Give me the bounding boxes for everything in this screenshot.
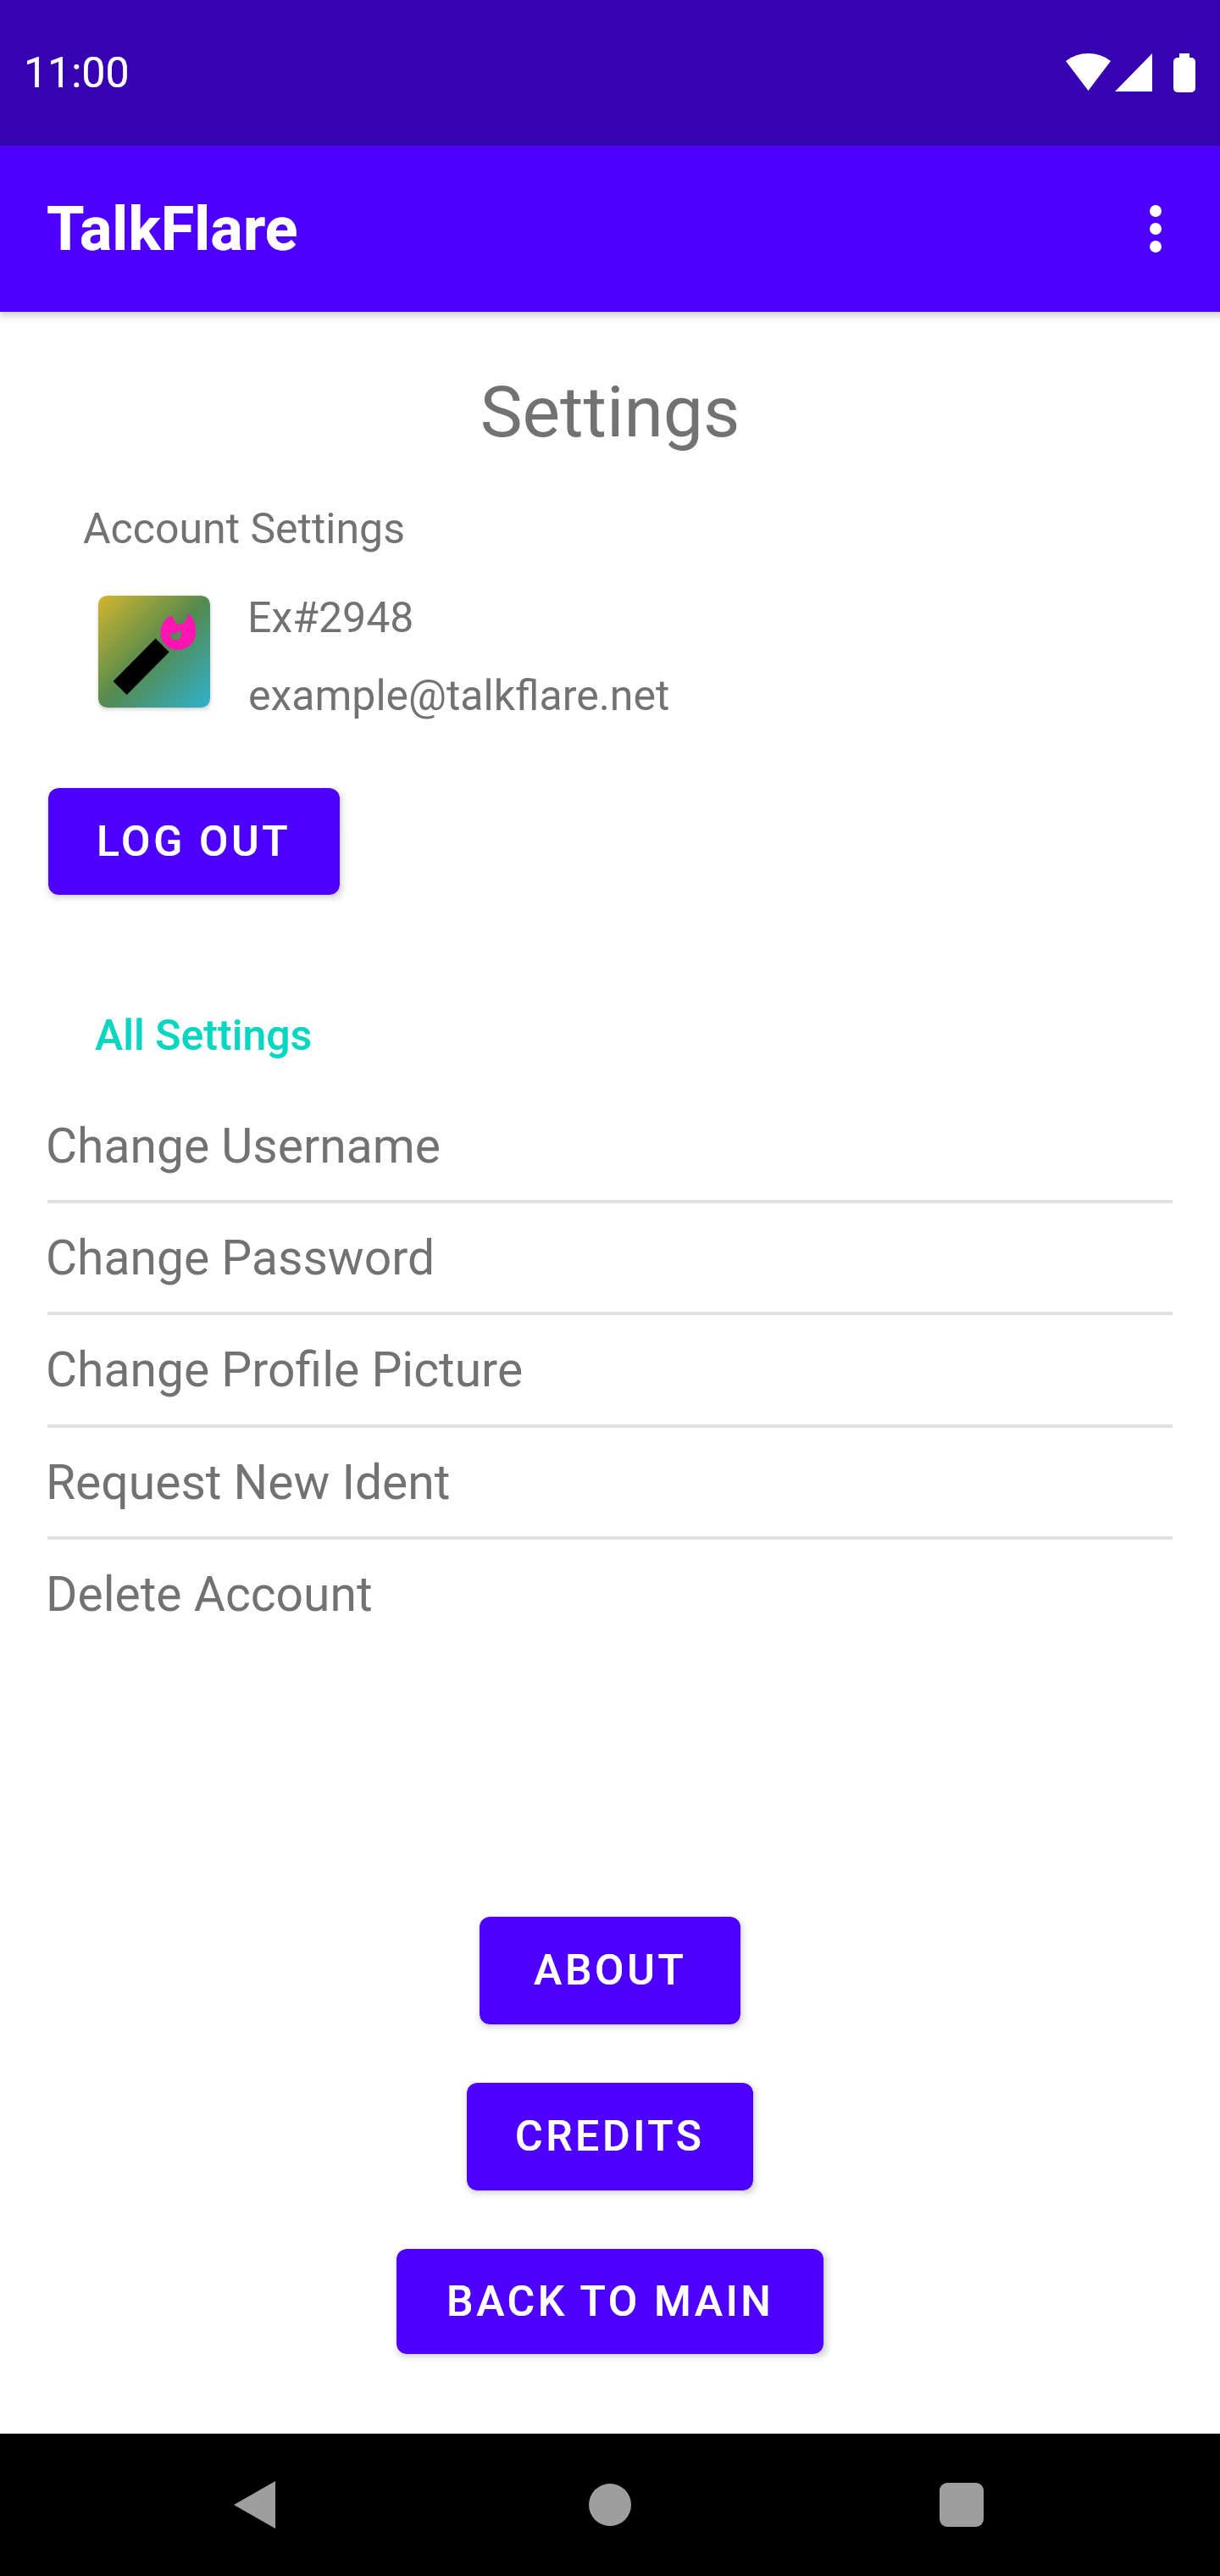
staticText: Change Password: [46, 1230, 435, 1286]
staticText: Change Profile Picture: [46, 1341, 524, 1398]
button[interactable]: Change Password: [0, 1203, 1220, 1315]
staticText: CREDITS: [515, 2112, 705, 2162]
button[interactable]: LOG OUT: [48, 788, 340, 895]
button[interactable]: More options: [1108, 181, 1203, 276]
staticText: BACK TO MAIN: [446, 2277, 774, 2327]
button[interactable]: Back: [186, 2437, 322, 2573]
button[interactable]: Recent apps: [894, 2437, 1029, 2573]
staticText: ABOUT: [534, 1946, 687, 1996]
staticText: Account Settings: [83, 504, 405, 554]
staticText: example@talkflare.net: [248, 671, 670, 721]
staticText: Change Username: [46, 1118, 441, 1174]
staticText: LOG OUT: [97, 817, 291, 867]
staticText: Settings: [0, 370, 1220, 453]
staticText: Request New Ident: [46, 1454, 451, 1511]
staticText: Delete Account: [46, 1566, 373, 1623]
button[interactable]: Change Username: [0, 1091, 1220, 1203]
button[interactable]: Change Profile Picture: [0, 1315, 1220, 1428]
button[interactable]: Delete Account: [0, 1540, 1220, 1652]
staticText: All Settings: [95, 1011, 313, 1061]
staticText: 11:00: [24, 48, 130, 98]
button[interactable]: Home: [542, 2437, 678, 2573]
button[interactable]: ABOUT: [480, 1917, 740, 2024]
button[interactable]: CREDITS: [467, 2083, 753, 2190]
button[interactable]: Request New Ident: [0, 1428, 1220, 1540]
staticText: Ex#2948: [247, 593, 414, 643]
staticText: TalkFlare: [47, 193, 298, 264]
button[interactable]: BACK TO MAIN: [396, 2249, 823, 2354]
